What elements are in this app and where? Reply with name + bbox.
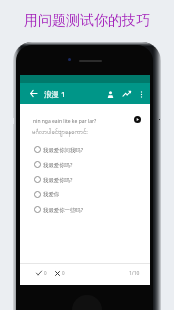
- button[interactable]: 我最爱你一些吗?: [34, 202, 150, 217]
- staticText: 浪漫 1: [44, 89, 66, 99]
- button[interactable]: Back: [27, 87, 40, 100]
- staticText: 1/10: [129, 270, 140, 277]
- staticText: 用问题测试你的技巧: [24, 12, 150, 30]
- staticText: 我最爱你一些吗?: [43, 206, 84, 213]
- button[interactable]: 我最爱你问我吗?: [34, 142, 150, 157]
- button[interactable]: More options: [135, 88, 147, 100]
- button[interactable]: 我爱你: [34, 187, 150, 202]
- staticText: 0: [62, 270, 65, 276]
- staticText: 0: [44, 270, 47, 276]
- staticText: 我最爱你吗?: [43, 161, 73, 168]
- staticText: 我最爱你问我吗?: [43, 146, 84, 153]
- button[interactable]: 0: [36, 270, 47, 276]
- button[interactable]: Statistics: [120, 87, 134, 101]
- staticText: nin nga eain lite ke par lar?: [33, 118, 97, 125]
- staticText: 我爱你: [43, 191, 60, 198]
- button[interactable]: 0: [55, 270, 65, 276]
- staticText: မင်္ဂလာပါခင်ဗျာနေကောင်း: [32, 128, 88, 137]
- button[interactable]: 我最爱你吗?: [34, 172, 150, 187]
- button[interactable]: Profile: [103, 87, 117, 101]
- staticText: 我最爱你吗?: [43, 176, 73, 183]
- button[interactable]: Play audio: [134, 116, 141, 123]
- button[interactable]: 我最爱你吗?: [34, 157, 150, 172]
